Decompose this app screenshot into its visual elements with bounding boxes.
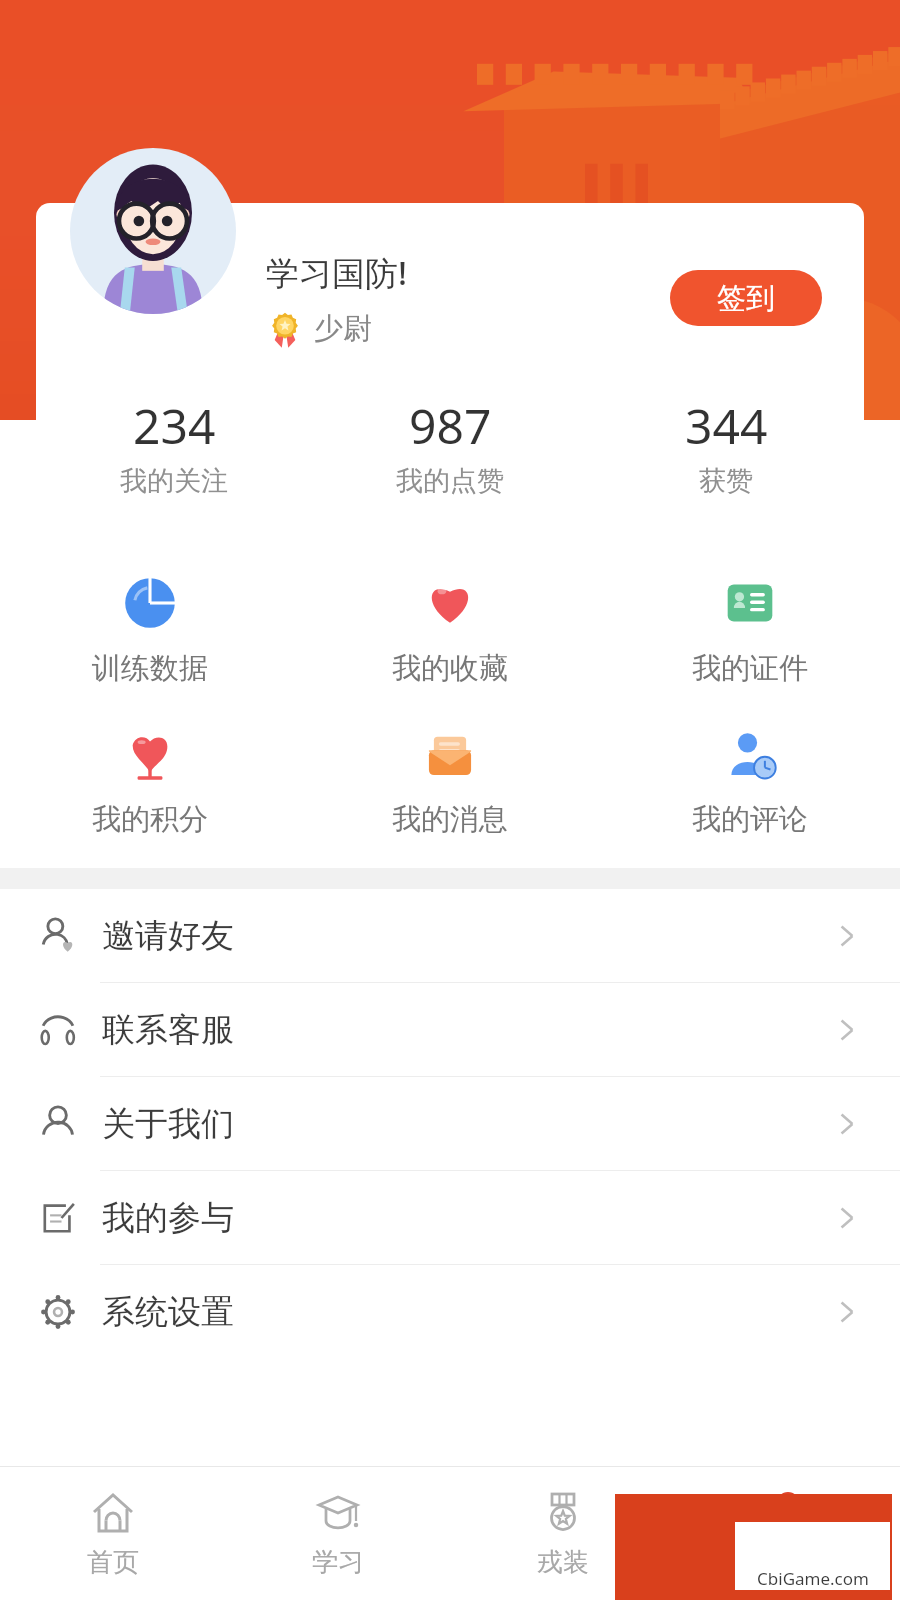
button[interactable]: 联系客服 [0, 983, 900, 1077]
staticText: 987 [409, 393, 492, 458]
button[interactable]: 首页 [0, 1467, 225, 1600]
staticText: 234 [133, 393, 216, 458]
staticText: 学习国防! [266, 250, 408, 295]
staticText: 学习 [312, 1546, 364, 1579]
button[interactable]: 987 [312, 393, 588, 545]
button[interactable]: 我的证件 [600, 568, 900, 691]
button[interactable]: 344 [588, 393, 864, 545]
staticText: 获赞 [699, 464, 753, 498]
button[interactable]: 系统设置 [0, 1265, 900, 1358]
staticText: 首页 [87, 1546, 139, 1579]
staticText: 戎装 [537, 1546, 589, 1579]
button[interactable]: 我的评论 [600, 719, 900, 842]
button[interactable]: 我的 [675, 1467, 900, 1600]
button[interactable]: 关于我们 [0, 1077, 900, 1171]
staticText: 我的关注 [120, 464, 228, 498]
staticText: 我的参与 [102, 1197, 234, 1239]
staticText: 训练数据 [92, 650, 208, 687]
staticText: 少尉 [314, 310, 372, 347]
staticText: 我的证件 [692, 650, 808, 687]
button[interactable]: 学习 [225, 1467, 450, 1600]
staticText: 签到 [717, 280, 775, 317]
staticText: 关于我们 [102, 1103, 234, 1145]
staticText: 344 [685, 393, 768, 458]
button[interactable]: 签到 [670, 270, 822, 326]
staticText: 我的点赞 [396, 464, 504, 498]
button[interactable]: 我的参与 [0, 1171, 900, 1265]
button[interactable]: Profile avatar [70, 148, 236, 314]
staticText: 我的消息 [392, 801, 508, 838]
button[interactable]: 我的积分 [0, 719, 300, 842]
button[interactable]: 戎装 [450, 1467, 675, 1600]
button[interactable]: 234 [36, 393, 312, 545]
staticText: 我的收藏 [392, 650, 508, 687]
staticText: 系统设置 [102, 1291, 234, 1333]
button[interactable]: 我的收藏 [300, 568, 600, 691]
staticText: 我的积分 [92, 801, 208, 838]
button[interactable]: 我的消息 [300, 719, 600, 842]
staticText: 邀请好友 [102, 915, 234, 957]
button[interactable]: 训练数据 [0, 568, 300, 691]
button[interactable]: 邀请好友 [0, 889, 900, 983]
staticText: CbiGame.com [757, 1567, 869, 1590]
staticText: 我的 [762, 1546, 814, 1579]
staticText: 联系客服 [102, 1009, 234, 1051]
staticText: 我的评论 [692, 801, 808, 838]
